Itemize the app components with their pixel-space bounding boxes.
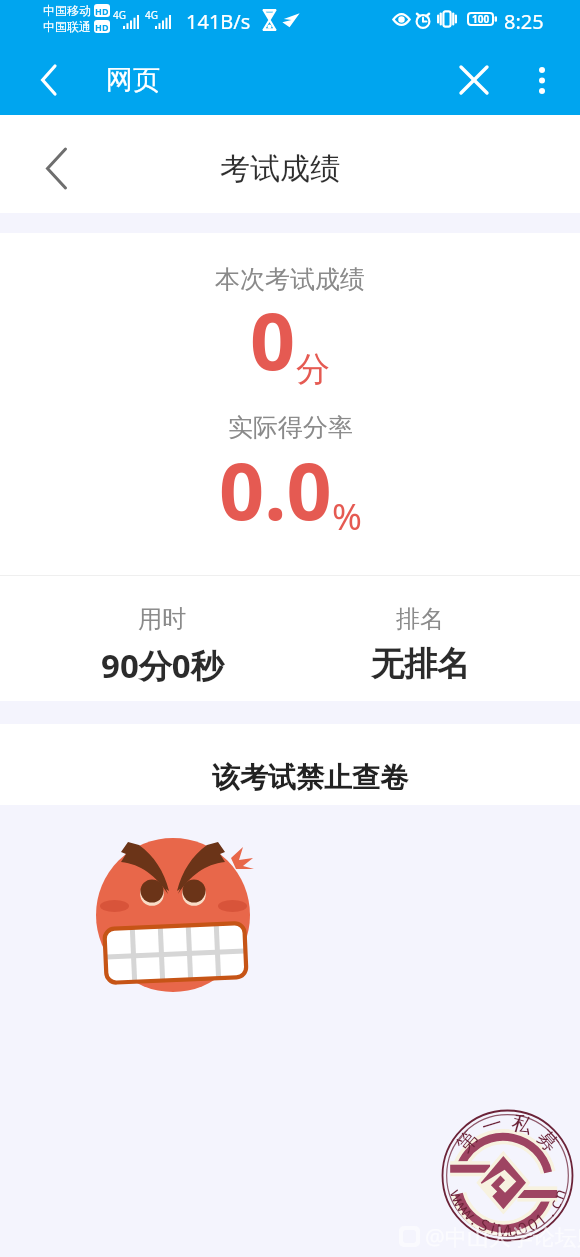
staticText: % [332,492,362,541]
staticText: 1 [530,1207,552,1231]
staticText: 排名 [396,604,444,634]
staticText: 100 [472,12,490,26]
staticText: 90分0秒 [101,643,224,688]
staticText: 分 [296,348,330,391]
staticText: 0 [515,1216,531,1240]
staticText: 0 [523,1212,542,1236]
staticText: u [507,1218,519,1241]
staticText: 141B/s [186,8,251,35]
staticText: 8:25 [504,8,544,35]
staticText: c [543,1195,566,1213]
staticText: 考试成绩 [220,150,340,188]
staticText: 0.0 [219,436,332,544]
staticText: 中国移动 [43,3,91,18]
staticText: 募 [532,1126,564,1156]
staticText: . [540,1203,559,1221]
staticText: 私 [509,1110,535,1138]
staticText: HD [95,21,109,33]
staticText: 用时 [138,604,186,634]
button[interactable]: Back [30,142,82,194]
staticText: 中国联通 [43,19,91,34]
staticText: 本次考试成绩 [215,264,365,295]
staticText: 实际得分率 [228,412,353,443]
button[interactable]: 用时 [38,576,286,701]
staticText: 第 [451,1126,483,1156]
staticText: HD [95,5,109,17]
staticText: M [495,1218,512,1242]
staticText: 该考试禁止查卷 [212,760,408,795]
staticText: w [445,1186,470,1206]
staticText: S [476,1213,493,1237]
button[interactable]: 排名 [296,576,544,701]
button[interactable]: Back [23,55,73,105]
staticText: 0 [250,286,296,394]
button[interactable]: More options [518,56,566,104]
staticText: 4G [145,8,158,22]
button[interactable]: Close [450,56,498,104]
staticText: n [547,1185,571,1202]
staticText: 网页 [106,63,160,97]
staticText: i [488,1217,499,1239]
staticText: w [449,1194,474,1216]
staticText: 无排名 [371,643,470,685]
staticText: . [467,1210,484,1230]
staticText: 4G [113,8,126,22]
staticText: w [456,1201,481,1225]
staticText: 一 [479,1111,505,1139]
staticText: @中山大学论坛贴吧 [425,1221,580,1251]
